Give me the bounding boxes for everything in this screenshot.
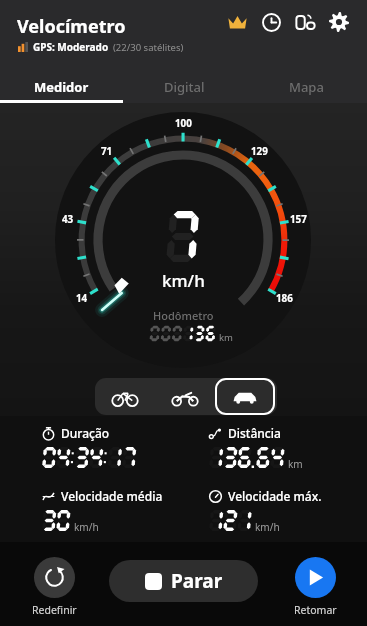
button[interactable]: History: [254, 5, 288, 39]
button[interactable]: Mapa: [245, 70, 367, 103]
button[interactable]: Rotate screen: [288, 5, 322, 39]
staticText: GPS: Moderado: [33, 40, 109, 54]
staticText: 43: [62, 213, 74, 226]
staticText: 186: [276, 292, 293, 305]
button[interactable]: Bicycle: [95, 378, 155, 415]
button[interactable]: Digital: [123, 70, 245, 103]
staticText: 71: [101, 145, 113, 158]
staticText: Hodômetro: [153, 308, 214, 323]
button[interactable]: Medidor: [0, 70, 123, 103]
button[interactable]: Distância: [167, 416, 334, 479]
staticText: Velocímetro: [17, 14, 126, 39]
button[interactable]: Velocidade máx.: [167, 479, 334, 542]
button[interactable]: Duração: [0, 416, 167, 479]
button[interactable]: Velocidade média: [0, 479, 167, 542]
staticText: Velocidade máx.: [228, 488, 322, 504]
staticText: km: [288, 457, 303, 471]
staticText: Velocidade média: [61, 488, 163, 504]
staticText: Parar: [171, 568, 223, 594]
staticText: Duração: [61, 425, 110, 441]
staticText: km: [219, 331, 233, 344]
staticText: km/h: [162, 269, 205, 292]
button[interactable]: Settings: [322, 5, 356, 39]
staticText: 100: [175, 117, 192, 130]
staticText: Medidor: [34, 78, 89, 96]
staticText: Mapa: [289, 78, 324, 96]
staticText: Distância: [228, 425, 281, 441]
button[interactable]: Premium: [220, 5, 254, 39]
button[interactable]: Motorcycle: [155, 378, 215, 415]
button[interactable]: Car: [215, 378, 275, 415]
staticText: Redefinir: [32, 603, 77, 617]
staticText: Digital: [164, 78, 205, 96]
button[interactable]: Redefinir: [14, 557, 94, 617]
staticText: 14: [76, 292, 88, 305]
button[interactable]: Parar: [109, 560, 258, 602]
staticText: 157: [290, 213, 307, 226]
button[interactable]: Retomar: [275, 557, 355, 617]
staticText: Retomar: [294, 603, 337, 617]
staticText: km/h: [255, 520, 280, 534]
staticText: 129: [251, 145, 268, 158]
staticText: (22/30 satélites): [113, 41, 184, 54]
staticText: km/h: [74, 520, 99, 534]
